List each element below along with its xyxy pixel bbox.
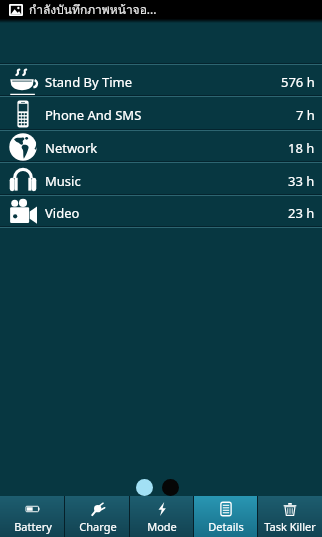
button[interactable]: Music: [0, 163, 322, 194]
button[interactable]: Phone And SMS: [0, 97, 322, 129]
button[interactable]: Battery: [0, 496, 65, 537]
staticText: Video: [45, 204, 80, 222]
button[interactable]: Details: [194, 496, 258, 537]
button[interactable]: Page 2: [162, 479, 179, 496]
button[interactable]: Network: [0, 131, 322, 161]
button[interactable]: Charge: [65, 496, 130, 537]
staticText: Stand By Time: [45, 73, 133, 91]
staticText: Details: [208, 519, 244, 534]
staticText: Phone And SMS: [45, 106, 142, 124]
staticText: 7 h: [296, 106, 315, 124]
staticText: 23 h: [288, 204, 315, 222]
button[interactable]: Task Killer: [258, 496, 322, 537]
staticText: Task Killer: [264, 519, 316, 534]
staticText: Battery: [14, 519, 52, 534]
button[interactable]: Mode: [130, 496, 194, 537]
staticText: Music: [45, 172, 81, 190]
button[interactable]: Page 1: [136, 479, 153, 496]
staticText: 33 h: [288, 172, 315, 190]
staticText: Mode: [147, 519, 177, 534]
staticText: 576 h: [281, 73, 315, 91]
staticText: Network: [45, 139, 98, 157]
staticText: กำลังบันทึกภาพหน้าจอ...: [29, 0, 157, 19]
button[interactable]: Stand By Time: [0, 65, 322, 95]
staticText: 18 h: [288, 139, 315, 157]
button[interactable]: Video: [0, 196, 322, 226]
staticText: Charge: [79, 519, 117, 534]
